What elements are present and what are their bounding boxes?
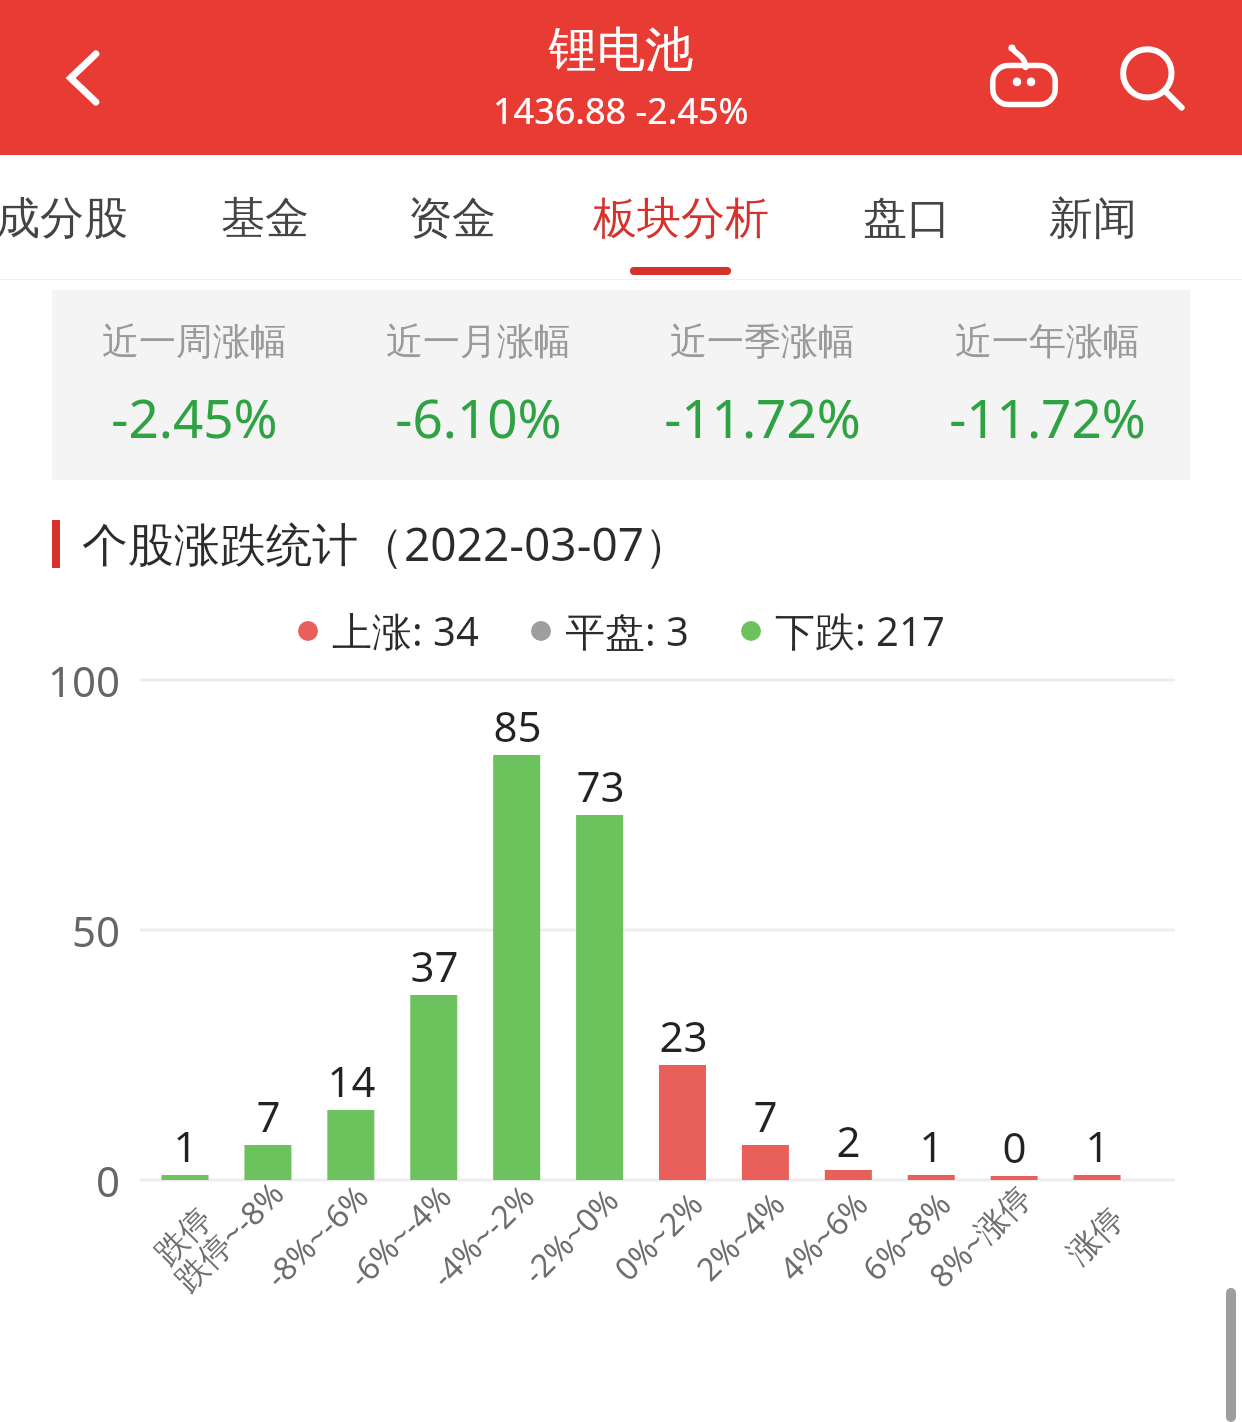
staticText: 1 [1085, 1117, 1110, 1174]
staticText: 涨停 [1058, 1199, 1132, 1273]
staticText: 73 [576, 757, 625, 814]
button[interactable]: 新闻 [1031, 163, 1155, 274]
button[interactable]: AI assistant [974, 28, 1074, 128]
staticText: 基金 [221, 191, 309, 246]
staticText: 跌停 [146, 1199, 220, 1273]
button[interactable]: 上涨: 34 [298, 603, 479, 658]
button[interactable]: 基金 [203, 163, 327, 274]
staticText: -2%~0% [513, 1178, 628, 1294]
staticText: 14 [327, 1052, 376, 1109]
button[interactable]: 盘口 [845, 163, 969, 274]
staticText: 0 [1002, 1118, 1027, 1175]
staticText: 6%~8% [852, 1182, 961, 1290]
staticText: 锂电池 [549, 20, 693, 80]
staticText: 7 [256, 1087, 281, 1144]
staticText: -4%~-2% [421, 1175, 544, 1297]
button[interactable]: 近一年涨幅 [905, 290, 1190, 480]
staticText: 板块分析 [593, 191, 769, 246]
staticText: 7 [753, 1087, 778, 1144]
button[interactable]: 资金 [390, 163, 514, 274]
staticText: -11.72% [664, 381, 861, 453]
staticText: 1 [919, 1117, 944, 1174]
staticText: 新闻 [1049, 191, 1137, 246]
button[interactable]: 近一周涨幅 [52, 290, 336, 480]
button[interactable]: Back [30, 23, 140, 133]
staticText: 近一年涨幅 [955, 318, 1140, 365]
button[interactable]: 近一月涨幅 [336, 290, 620, 480]
staticText: 跌停~-8% [165, 1172, 293, 1300]
staticText: 2%~4% [686, 1182, 795, 1290]
staticText: -2.45% [111, 381, 278, 453]
staticText: -6.10% [395, 381, 562, 453]
button[interactable]: 下跌: 217 [741, 603, 945, 658]
staticText: 23 [659, 1007, 708, 1064]
staticText: 2 [836, 1112, 861, 1169]
staticText: 0 [95, 1152, 120, 1208]
staticText: 100 [47, 652, 120, 708]
staticText: 平盘: 3 [565, 603, 689, 658]
staticText: 近一季涨幅 [670, 318, 855, 365]
staticText: 盘口 [863, 191, 951, 246]
staticText: 成分股 [0, 191, 128, 246]
staticText: 0%~2% [604, 1182, 713, 1290]
staticText: 资金 [408, 191, 496, 246]
staticText: 37 [410, 937, 459, 994]
staticText: 近一月涨幅 [386, 318, 571, 365]
button[interactable]: 成分股 [0, 163, 146, 274]
staticText: 85 [493, 697, 542, 754]
button[interactable]: Search [1102, 28, 1202, 128]
staticText: -6%~-4% [338, 1175, 461, 1297]
staticText: 1436.88 -2.45% [493, 86, 749, 135]
staticText: 下跌: 217 [775, 603, 945, 658]
button[interactable]: 近一季涨幅 [620, 290, 905, 480]
staticText: 8%~涨停 [919, 1175, 1041, 1297]
staticText: 近一周涨幅 [102, 318, 287, 365]
staticText: 1 [173, 1117, 198, 1174]
staticText: 50 [71, 902, 120, 958]
staticText: 个股涨跌统计（2022-03-07） [82, 512, 691, 575]
button[interactable]: 板块分析 [575, 163, 787, 274]
staticText: -8%~-6% [255, 1175, 378, 1297]
staticText: 4%~6% [769, 1182, 878, 1290]
staticText: 上涨: 34 [332, 603, 479, 658]
button[interactable]: 平盘: 3 [531, 603, 689, 658]
staticText: -11.72% [949, 381, 1146, 453]
